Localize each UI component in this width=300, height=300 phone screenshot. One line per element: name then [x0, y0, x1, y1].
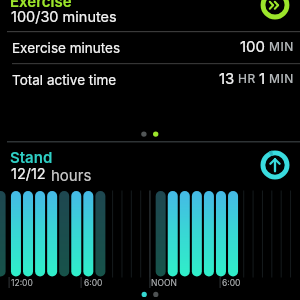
staticText: 1: [259, 69, 266, 87]
staticText: 100: [240, 37, 266, 55]
staticText: 100/30 minutes: [11, 8, 117, 26]
staticText: Exercise minutes: [12, 40, 121, 56]
staticText: 6:00: [222, 278, 241, 288]
staticText: HR: [238, 71, 256, 86]
button[interactable]: [260, 0, 290, 20]
staticText: MIN: [269, 39, 294, 54]
button[interactable]: Exercise minutes: [0, 32, 300, 63]
staticText: Stand: [10, 148, 53, 166]
button[interactable]: Total active time: [0, 64, 300, 95]
button[interactable]: [260, 150, 290, 180]
staticText: Total active time: [12, 72, 117, 88]
staticText: 12:00: [11, 278, 33, 288]
staticText: 12/12: [11, 165, 46, 183]
staticText: MIN: [269, 71, 294, 86]
staticText: 6:00: [84, 278, 103, 288]
staticText: 13: [219, 69, 235, 87]
staticText: hours: [51, 166, 92, 184]
staticText: Exercise: [10, 0, 72, 10]
staticText: NOON: [151, 278, 177, 288]
